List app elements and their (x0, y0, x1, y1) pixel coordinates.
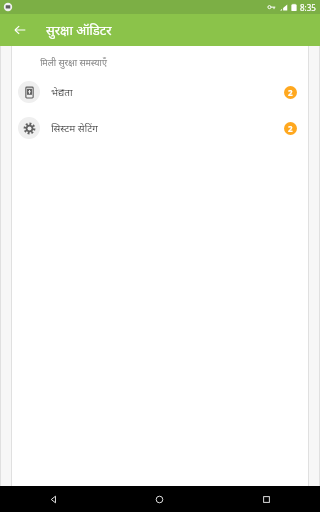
staticText: 8:35 (300, 2, 316, 13)
staticText: सुरक्षा ऑडिटर (46, 21, 112, 39)
button[interactable]: भेद्यता (11, 74, 309, 110)
button[interactable]: Home (106, 486, 213, 512)
button[interactable]: सिस्टम सेटिंग (11, 110, 309, 146)
staticText: भेद्यता (51, 85, 73, 99)
button[interactable]: Back (0, 486, 106, 512)
button[interactable]: Back (8, 18, 32, 42)
staticText: सिस्टम सेटिंग (51, 121, 98, 135)
staticText: 2 (288, 87, 293, 98)
staticText: मिली सुरक्षा समस्याएँ (40, 56, 107, 68)
button[interactable]: Recent apps (213, 486, 320, 512)
staticText: 2 (288, 123, 293, 134)
